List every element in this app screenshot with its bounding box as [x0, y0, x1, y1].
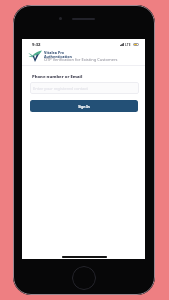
staticText: Enter your registered contact: [33, 86, 88, 91]
button[interactable]: Enter your registered contact: [30, 82, 139, 94]
staticText: 9:32: [32, 42, 41, 48]
staticText: Vitalea Pro: [44, 50, 65, 55]
staticText: Phone number or Email: [32, 74, 83, 80]
button[interactable]: Sign In: [30, 100, 138, 112]
staticText: Authentication: [44, 54, 72, 59]
staticText: LTE: [125, 42, 131, 47]
button[interactable]: Home: [72, 266, 96, 290]
staticText: Sign In: [78, 104, 90, 109]
staticText: OTP Verification for Existing Customers: [44, 57, 118, 62]
